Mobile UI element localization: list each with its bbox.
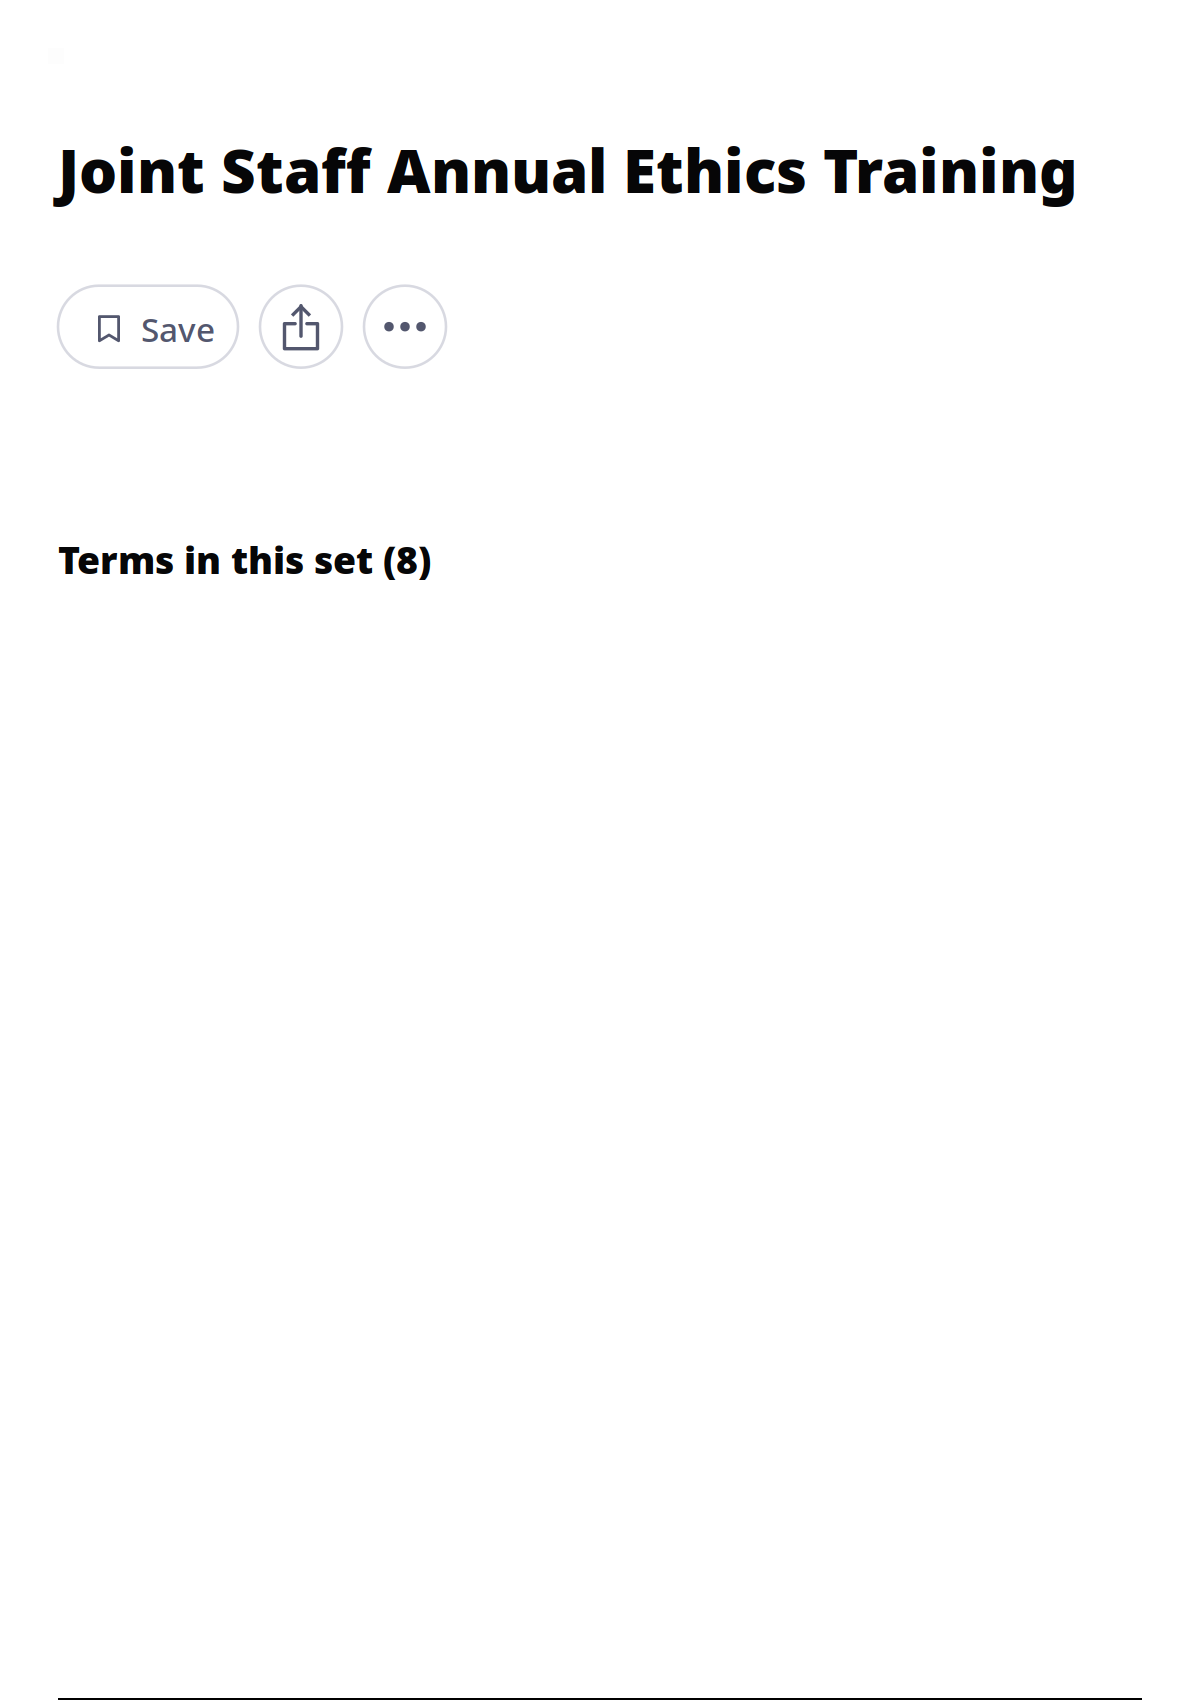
staticText: Save [141,307,215,351]
button[interactable]: More options [364,286,446,368]
button[interactable]: Share [260,286,342,368]
staticText: Joint Staff Annual Ethics Training [58,130,1078,210]
staticText: Terms in this set (8) [58,535,431,584]
button[interactable]: Save [58,286,238,368]
